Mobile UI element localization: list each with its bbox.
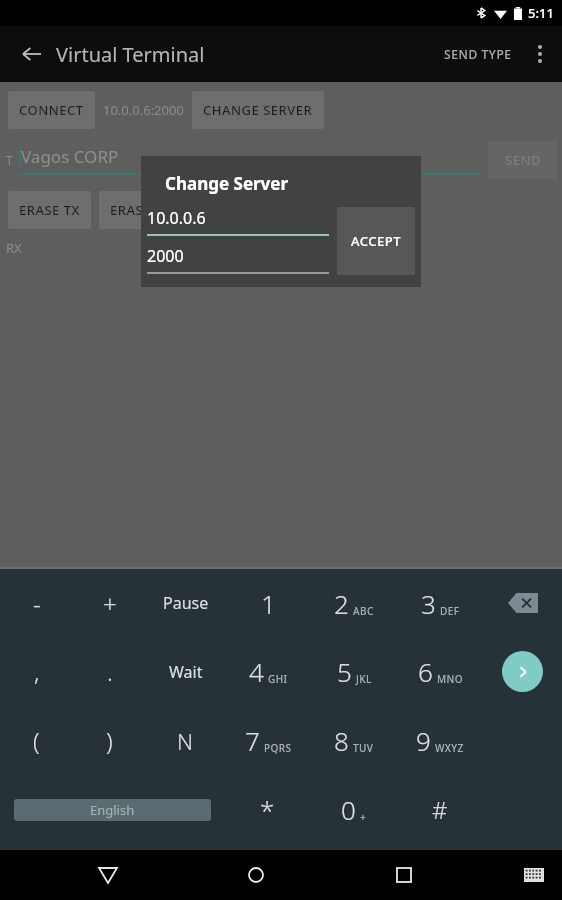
- button[interactable]: (: [0, 706, 73, 775]
- staticText: N: [177, 726, 194, 756]
- button[interactable]: 3: [397, 569, 483, 637]
- staticText: 5: [337, 654, 352, 689]
- staticText: 4: [249, 654, 264, 689]
- staticText: 6: [418, 654, 433, 689]
- button[interactable]: SEND TYPE: [438, 32, 518, 76]
- staticText: Wait: [169, 661, 203, 683]
- button[interactable]: Pause: [146, 569, 225, 637]
- staticText: 8: [334, 723, 349, 758]
- button[interactable]: .: [73, 637, 146, 706]
- staticText: Virtual Terminal: [56, 41, 205, 68]
- staticText: 0: [341, 792, 356, 827]
- button[interactable]: +: [73, 569, 146, 637]
- button[interactable]: ACCEPT: [337, 207, 415, 275]
- staticText: 5:11: [528, 4, 554, 22]
- staticText: -: [33, 587, 41, 620]
- staticText: Pause: [163, 592, 209, 614]
- button[interactable]: SEND: [488, 141, 558, 179]
- button[interactable]: Enter: [483, 637, 562, 706]
- staticText: 3: [421, 586, 436, 621]
- button[interactable]: ,: [0, 637, 73, 706]
- button[interactable]: CONNECT: [8, 91, 95, 129]
- button[interactable]: Backspace: [483, 569, 562, 637]
- button[interactable]: #: [397, 775, 483, 844]
- button[interactable]: Back: [8, 30, 56, 78]
- staticText: *: [260, 792, 275, 827]
- button[interactable]: 2: [311, 569, 397, 637]
- staticText: JKL: [356, 672, 372, 686]
- staticText: ERASE TX: [19, 201, 80, 219]
- button[interactable]: N: [146, 706, 225, 775]
- staticText: (: [33, 724, 40, 757]
- staticText: PQRS: [264, 741, 292, 755]
- button[interactable]: *: [224, 775, 311, 844]
- button[interactable]: CHANGE SERVER: [192, 91, 324, 129]
- staticText: RX: [6, 239, 22, 257]
- button[interactable]: 7: [225, 706, 311, 775]
- staticText: Change Server: [165, 172, 289, 195]
- button[interactable]: 6: [397, 637, 483, 706]
- staticText: ACCEPT: [351, 232, 401, 250]
- staticText: 2000: [147, 245, 184, 267]
- button[interactable]: -: [0, 569, 73, 637]
- button[interactable]: Back: [84, 851, 132, 899]
- staticText: .: [107, 655, 113, 688]
- staticText: ERASE RX: [110, 201, 172, 219]
- button[interactable]: 5: [311, 637, 397, 706]
- staticText: SEND: [505, 151, 541, 169]
- staticText: 7: [245, 723, 260, 758]
- staticText: ,: [34, 655, 40, 688]
- button[interactable]: ERASE RX: [99, 191, 183, 229]
- button[interactable]: 0: [311, 775, 397, 844]
- staticText: TUV: [353, 741, 374, 755]
- button[interactable]: 8: [311, 706, 397, 775]
- staticText: 2: [334, 586, 349, 621]
- button[interactable]: 4: [225, 637, 311, 706]
- staticText: 10.0.0.6:2000: [103, 101, 184, 119]
- staticText: SEND TYPE: [444, 46, 512, 62]
- button[interactable]: ): [73, 706, 146, 775]
- button[interactable]: 1: [225, 569, 311, 637]
- staticText: 9: [416, 723, 431, 758]
- staticText: MNO: [437, 672, 463, 686]
- staticText: WXYZ: [435, 741, 464, 755]
- staticText: CONNECT: [19, 101, 84, 119]
- staticText: English: [90, 801, 135, 819]
- staticText: #: [432, 793, 448, 826]
- button[interactable]: More options: [518, 32, 562, 76]
- button[interactable]: Recents: [380, 851, 428, 899]
- staticText: Vagos CORP: [21, 145, 119, 168]
- button[interactable]: 9: [397, 706, 483, 775]
- button[interactable]: ERASE TX: [8, 191, 91, 229]
- staticText: 10.0.0.6: [147, 207, 206, 229]
- staticText: +: [360, 810, 367, 824]
- button[interactable]: English: [14, 799, 211, 821]
- staticText: ABC: [353, 604, 374, 618]
- button[interactable]: Switch keyboard: [512, 853, 556, 897]
- staticText: CHANGE SERVER: [203, 101, 313, 119]
- staticText: GHI: [268, 672, 288, 686]
- button[interactable]: Home: [232, 851, 280, 899]
- button[interactable]: Wait: [146, 637, 225, 706]
- staticText: 1: [261, 586, 276, 621]
- staticText: +: [103, 587, 117, 620]
- staticText: DEF: [440, 604, 460, 618]
- staticText: ): [106, 724, 113, 757]
- staticText: T: [6, 152, 13, 168]
